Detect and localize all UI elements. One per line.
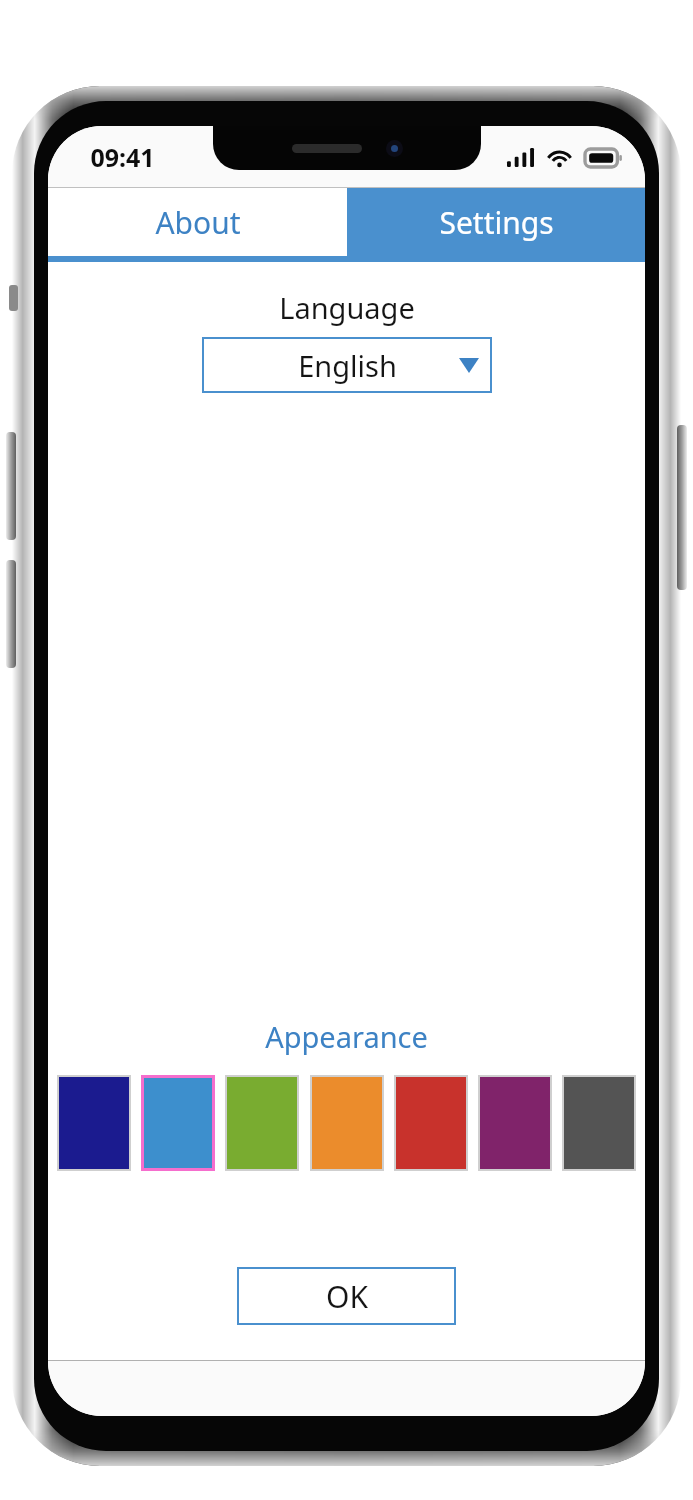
button[interactable]: Settings <box>347 188 645 256</box>
staticText: Settings <box>439 202 554 243</box>
staticText: Appearance <box>265 1017 428 1056</box>
button[interactable]: Theme colour 2 <box>141 1075 215 1171</box>
button[interactable]: Theme colour 7 <box>562 1075 636 1171</box>
staticText: About <box>155 202 241 243</box>
staticText: Language <box>279 288 415 327</box>
button[interactable]: Theme colour 3 <box>225 1075 299 1171</box>
button[interactable]: Theme colour 5 <box>394 1075 468 1171</box>
button[interactable]: English <box>202 337 492 393</box>
staticText: 09:41 <box>90 140 155 174</box>
staticText: English <box>298 346 397 385</box>
staticText: OK <box>326 1276 368 1317</box>
button[interactable]: Theme colour 4 <box>310 1075 384 1171</box>
button[interactable]: About <box>48 188 347 256</box>
button[interactable]: OK <box>237 1267 456 1325</box>
button[interactable]: Theme colour 1 <box>57 1075 131 1171</box>
button[interactable]: Theme colour 6 <box>478 1075 552 1171</box>
